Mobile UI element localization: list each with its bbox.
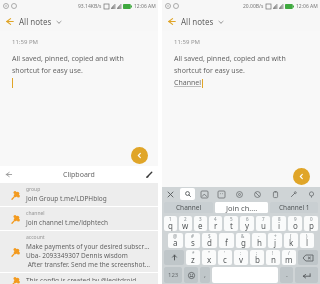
staticText: Make payments of your desired subscripti… <box>26 242 150 251</box>
button[interactable]: Back <box>0 12 19 31</box>
button[interactable]: Channel <box>164 202 213 213</box>
staticText: ' <box>224 250 226 256</box>
staticText: l <box>306 237 309 248</box>
button[interactable]: ) <box>300 233 314 248</box>
staticText: b <box>255 254 260 265</box>
staticText: All notes <box>181 16 214 27</box>
button[interactable]: Channel 1 <box>270 202 318 213</box>
staticText: ; <box>256 250 258 256</box>
button[interactable]: account <box>0 231 158 272</box>
button[interactable]: , <box>200 267 210 283</box>
staticText: ( <box>290 233 292 239</box>
staticText: k <box>289 237 294 248</box>
staticText: q <box>168 220 173 231</box>
staticText: All saved, pinned, copied and with short… <box>12 54 148 75</box>
button[interactable]: 2 <box>179 216 192 231</box>
button[interactable]: Emoji <box>248 187 266 201</box>
staticText: . <box>286 270 288 280</box>
button[interactable]: 7 <box>256 216 270 231</box>
button[interactable]: @ <box>168 233 183 248</box>
button[interactable]: All notes <box>19 16 62 27</box>
button[interactable]: 4 <box>209 216 222 231</box>
staticText: a <box>173 237 178 248</box>
button[interactable]: $ <box>202 233 217 248</box>
button[interactable]: Shift <box>164 250 184 265</box>
button[interactable]: . <box>280 267 293 283</box>
button[interactable]: Voice <box>284 187 302 201</box>
staticText: group <box>26 186 41 193</box>
staticText: Channel <box>174 78 202 88</box>
button[interactable]: ( <box>284 233 298 248</box>
button[interactable]: Clipboard <box>266 187 284 201</box>
button[interactable]: _ <box>219 233 234 248</box>
button[interactable]: ; <box>250 250 264 265</box>
button[interactable]: channel <box>0 207 158 230</box>
staticText: After transfer. Send me the screenshot..… <box>26 260 150 269</box>
button[interactable]: : <box>234 250 248 265</box>
button[interactable]: - <box>252 233 266 248</box>
button[interactable]: Back <box>162 12 181 31</box>
button[interactable]: 9 <box>288 216 302 231</box>
button[interactable]: ' <box>218 250 232 265</box>
staticText: Join Group t.me/LDPHblog <box>26 194 107 203</box>
button[interactable]: Themes <box>230 187 248 201</box>
staticText: 6 <box>246 216 249 222</box>
button[interactable]: 6 <box>240 216 254 231</box>
button[interactable]: " <box>202 250 216 265</box>
staticText: y <box>245 220 250 231</box>
button[interactable]: & <box>236 233 250 248</box>
staticText: ) <box>306 233 308 239</box>
button[interactable]: Backspace <box>298 250 318 265</box>
button[interactable]: # <box>185 233 200 248</box>
staticText: m <box>285 254 293 265</box>
button[interactable]: Stickers <box>213 187 230 201</box>
staticText: u <box>261 220 266 231</box>
button[interactable]: Emoji <box>184 267 198 283</box>
button[interactable]: Close toolbar <box>162 187 179 201</box>
button[interactable]: Collapse <box>293 168 310 185</box>
staticText: n <box>271 254 276 265</box>
staticText: 123 <box>168 271 179 279</box>
staticText: 9 <box>294 216 297 222</box>
button[interactable]: * <box>186 250 200 265</box>
button[interactable]: Location <box>302 187 320 201</box>
button[interactable]: Collapse <box>131 147 148 164</box>
button[interactable]: 3 <box>194 216 207 231</box>
staticText: d <box>207 237 212 248</box>
button[interactable]: 5 <box>224 216 238 231</box>
button[interactable]: Edit <box>141 166 158 183</box>
button[interactable]: Images <box>196 187 213 201</box>
staticText: : <box>240 250 242 256</box>
button[interactable]: 123 <box>164 267 182 283</box>
button[interactable]: Back <box>0 166 17 183</box>
staticText: e <box>198 220 203 231</box>
button[interactable]: Enter <box>295 267 318 283</box>
button[interactable]: This config is created by @legitdroid <box>0 273 158 284</box>
button[interactable]: ! <box>266 250 280 265</box>
button[interactable]: 8 <box>272 216 286 231</box>
staticText: c <box>223 254 227 265</box>
button[interactable]: group <box>0 183 158 206</box>
staticText: 20.00B/s <box>243 3 264 10</box>
button[interactable]: All notes <box>181 16 224 27</box>
staticText: h <box>257 237 262 248</box>
staticText: t <box>230 220 233 231</box>
staticText: 12:06 AM <box>134 3 156 10</box>
button[interactable]: + <box>268 233 282 248</box>
button[interactable]: Join ch.... <box>215 202 268 213</box>
staticText: r <box>214 220 218 231</box>
staticText: 93.14KB/s <box>78 3 102 10</box>
staticText: 1 <box>169 216 172 222</box>
button[interactable]: 1 <box>164 216 177 231</box>
button[interactable]: / <box>282 250 296 265</box>
staticText: 11:59 PM <box>174 38 200 46</box>
staticText: z <box>191 254 195 265</box>
staticText: All saved, pinned, copied and with short… <box>174 54 310 75</box>
staticText: Uba- 2093349307 Dennis wisdom <box>26 251 128 260</box>
staticText: 2 <box>184 216 187 222</box>
staticText: o <box>293 220 298 231</box>
button[interactable]: Search <box>180 188 195 200</box>
staticText: f <box>225 237 228 248</box>
button[interactable]: 0 <box>304 216 318 231</box>
